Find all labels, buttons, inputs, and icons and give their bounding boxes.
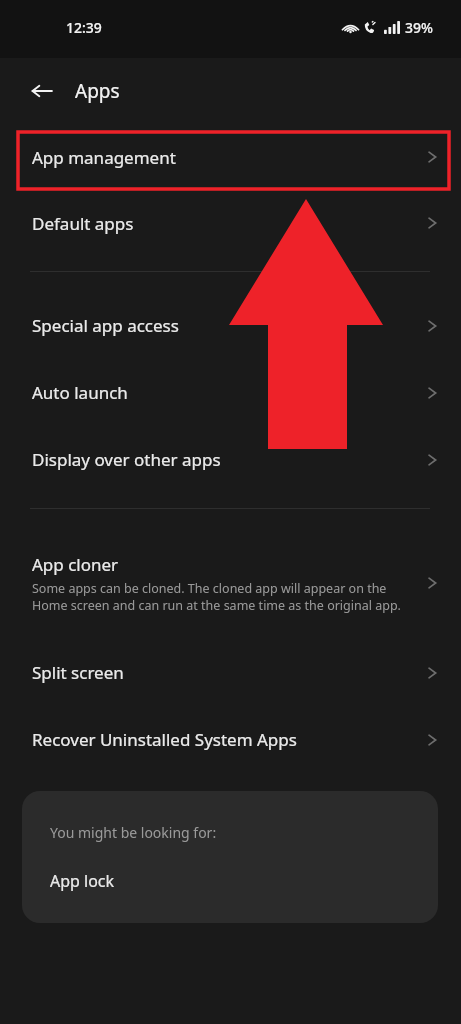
button[interactable]: Back bbox=[22, 71, 62, 111]
button[interactable]: Special app access bbox=[0, 292, 461, 359]
staticText: 12:39 bbox=[66, 18, 102, 37]
button[interactable]: Display over other apps bbox=[0, 426, 461, 493]
button[interactable]: App lock bbox=[50, 870, 115, 892]
staticText: Special app access bbox=[32, 314, 179, 337]
staticText: 39% bbox=[405, 18, 433, 37]
staticText: App lock bbox=[50, 870, 115, 892]
button[interactable]: Auto launch bbox=[0, 359, 461, 426]
staticText: Default apps bbox=[32, 212, 134, 235]
staticText: Auto launch bbox=[32, 381, 128, 404]
button[interactable]: Recover Uninstalled System Apps bbox=[0, 706, 461, 773]
staticText: Display over other apps bbox=[32, 448, 221, 471]
button[interactable]: App cloner bbox=[0, 527, 461, 639]
staticText: You might be looking for: bbox=[50, 823, 217, 842]
staticText: Some apps can be cloned. The cloned app … bbox=[32, 580, 405, 614]
staticText: Apps bbox=[75, 78, 120, 104]
staticText: Recover Uninstalled System Apps bbox=[32, 728, 297, 751]
button[interactable]: Split screen bbox=[0, 639, 461, 706]
staticText: Split screen bbox=[32, 661, 124, 684]
button[interactable]: Default apps bbox=[0, 190, 461, 256]
staticText: App management bbox=[32, 146, 176, 169]
button[interactable]: App management bbox=[0, 124, 461, 190]
staticText: App cloner bbox=[32, 553, 119, 576]
